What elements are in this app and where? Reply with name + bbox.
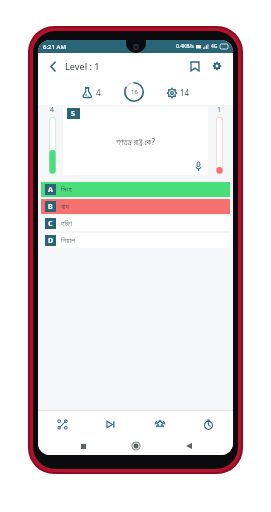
staticText: 4 xyxy=(96,87,101,98)
button[interactable]: A xyxy=(41,182,230,197)
staticText: শিয়াল xyxy=(61,237,75,245)
button[interactable]: Fifty fifty xyxy=(38,411,86,437)
button[interactable]: D xyxy=(41,233,230,248)
button[interactable]: 14 xyxy=(165,85,192,100)
staticText: 16 xyxy=(131,88,138,96)
button[interactable]: Settings xyxy=(208,57,226,75)
button[interactable]: 4 xyxy=(80,85,103,100)
staticText: 4 xyxy=(50,105,55,115)
staticText: Level : 1 xyxy=(65,60,100,72)
button[interactable]: Home xyxy=(127,437,145,455)
button[interactable]: Audience poll xyxy=(135,411,184,437)
button[interactable]: Speak xyxy=(192,160,204,172)
staticText: A xyxy=(48,185,53,195)
button[interactable]: Extra time xyxy=(184,411,233,437)
staticText: 14 xyxy=(180,87,190,98)
staticText: সিংহ xyxy=(61,186,72,194)
button[interactable]: Back xyxy=(180,437,198,455)
button[interactable]: Back xyxy=(45,58,61,74)
staticText: 5 xyxy=(71,109,76,119)
staticText: 0.4KB/s xyxy=(176,43,194,50)
staticText: 6:21 AM xyxy=(43,43,66,51)
staticText: B xyxy=(48,202,53,212)
staticText: D xyxy=(48,236,54,246)
button[interactable]: Recents xyxy=(74,437,92,455)
button[interactable]: Bookmark xyxy=(186,57,204,75)
staticText: গণতন্ত্র রাষ্ট্র কে? xyxy=(116,136,155,147)
button[interactable]: B xyxy=(41,199,230,214)
staticText: 4G xyxy=(211,43,218,50)
staticText: বাঘ xyxy=(61,203,69,211)
staticText: হরিণ xyxy=(61,220,72,228)
button[interactable]: C xyxy=(41,216,230,231)
button[interactable]: Skip xyxy=(86,411,135,437)
staticText: 1 xyxy=(217,105,222,115)
staticText: C xyxy=(48,219,53,229)
